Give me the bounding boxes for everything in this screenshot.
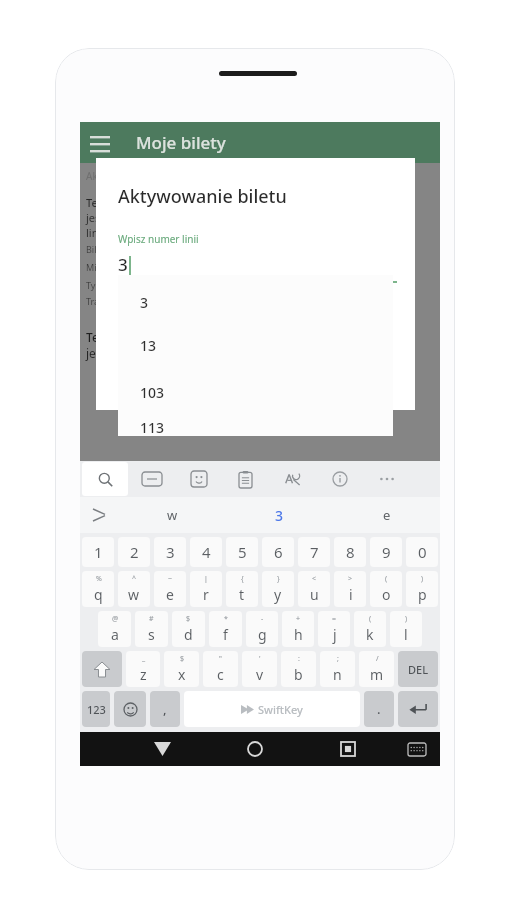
staticText: .	[377, 700, 381, 718]
button[interactable]: *	[209, 611, 242, 647]
button[interactable]: Back	[116, 732, 208, 766]
button[interactable]: Clipboard	[222, 462, 269, 496]
button[interactable]: -	[246, 611, 278, 647]
button[interactable]: Space	[184, 691, 360, 727]
button[interactable]: Collapse predictions	[80, 497, 118, 533]
staticText: '	[259, 654, 261, 664]
staticText: -	[261, 614, 264, 624]
button[interactable]: $	[172, 611, 205, 647]
button[interactable]: |	[190, 571, 222, 607]
staticText: k	[366, 625, 374, 644]
staticText: n	[333, 665, 342, 684]
button[interactable]: )	[390, 611, 422, 647]
button[interactable]: 4	[190, 537, 222, 567]
button[interactable]: Translate	[269, 462, 316, 496]
staticText: Bilet	[86, 243, 105, 255]
button[interactable]: /	[359, 651, 394, 687]
staticText: $	[186, 614, 191, 624]
button[interactable]: w	[118, 497, 226, 533]
button[interactable]: 5	[226, 537, 258, 567]
button[interactable]: DEL	[398, 651, 438, 687]
button[interactable]: %	[82, 571, 114, 607]
button[interactable]: >	[334, 571, 366, 607]
button[interactable]: (	[354, 611, 386, 647]
staticText: $	[180, 654, 185, 664]
button[interactable]: 13	[118, 322, 393, 369]
button[interactable]: ~	[154, 571, 186, 607]
button[interactable]: Open navigation menu	[80, 123, 120, 163]
button[interactable]: 7	[298, 537, 330, 567]
staticText: Telefon	[86, 329, 129, 345]
button[interactable]: e	[333, 497, 440, 533]
button[interactable]: Emoji	[114, 691, 146, 727]
staticText: 2	[130, 542, 139, 562]
button[interactable]: =	[318, 611, 350, 647]
button[interactable]: Search	[82, 462, 128, 496]
button[interactable]: ^	[118, 571, 150, 607]
staticText: Aktywny bilet	[86, 169, 149, 183]
staticText: l	[404, 625, 408, 644]
staticText: 5	[238, 542, 247, 562]
button[interactable]: 3	[154, 537, 186, 567]
button[interactable]: GIF icon	[128, 462, 175, 496]
staticText: )	[405, 614, 408, 624]
button[interactable]: Info	[316, 462, 363, 496]
staticText: x	[178, 665, 186, 684]
staticText: DEL	[408, 662, 429, 677]
button[interactable]: 6	[262, 537, 294, 567]
staticText: t	[239, 585, 245, 604]
staticText: Typ	[86, 279, 101, 291]
button[interactable]: <	[298, 571, 330, 607]
button[interactable]: :	[281, 651, 316, 687]
button[interactable]: }	[262, 571, 294, 607]
button[interactable]: Stickers	[175, 462, 222, 496]
staticText: q	[94, 585, 103, 604]
staticText: :	[298, 654, 300, 664]
button[interactable]: (	[370, 571, 402, 607]
staticText: ^	[132, 574, 137, 584]
button[interactable]: _	[126, 651, 160, 687]
staticText: j	[333, 625, 337, 644]
staticText: d	[184, 625, 193, 644]
button[interactable]: Recent apps	[301, 732, 394, 766]
button[interactable]: 113	[118, 416, 393, 434]
button[interactable]: 8	[334, 537, 366, 567]
button[interactable]: 103	[118, 369, 393, 416]
staticText: 3	[275, 506, 284, 525]
button[interactable]: Hide keyboard	[394, 732, 440, 766]
button[interactable]: #	[135, 611, 168, 647]
staticText: c	[217, 665, 224, 684]
staticText: Moje bilety	[136, 131, 226, 154]
staticText: |	[204, 574, 208, 584]
staticText: 6	[274, 542, 283, 562]
button[interactable]: Enter	[398, 691, 438, 727]
button[interactable]: 9	[370, 537, 402, 567]
staticText: i	[349, 585, 353, 604]
button[interactable]: 123	[82, 691, 110, 727]
button[interactable]: "	[203, 651, 238, 687]
staticText: >	[348, 574, 353, 584]
staticText: 3	[118, 253, 128, 276]
button[interactable]: 2	[118, 537, 150, 567]
button[interactable]: {	[226, 571, 258, 607]
button[interactable]: $	[164, 651, 199, 687]
staticText: b	[294, 665, 303, 684]
button[interactable]: ;	[320, 651, 355, 687]
button[interactable]: .	[364, 691, 394, 727]
staticText: 9	[382, 542, 391, 562]
button[interactable]: ,	[150, 691, 180, 727]
staticText: z	[140, 665, 147, 684]
button[interactable]: +	[282, 611, 314, 647]
button[interactable]: 3	[118, 275, 393, 322]
button[interactable]: Home	[208, 732, 301, 766]
button[interactable]: )	[406, 571, 438, 607]
button[interactable]: Shift	[82, 651, 122, 687]
button[interactable]: @	[98, 611, 131, 647]
button[interactable]: 3	[226, 497, 333, 533]
button[interactable]: 1	[82, 537, 114, 567]
button[interactable]: 0	[406, 537, 438, 567]
button[interactable]: More options	[363, 462, 410, 496]
button[interactable]: '	[242, 651, 277, 687]
staticText: ~	[168, 574, 173, 584]
staticText: ,	[163, 700, 167, 718]
